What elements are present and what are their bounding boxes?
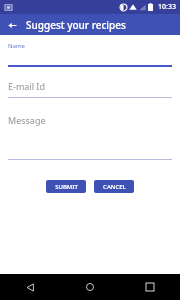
button[interactable]: CANCEL	[94, 180, 134, 193]
button[interactable]: Home	[60, 274, 120, 300]
staticText: E-mail Id	[8, 80, 45, 92]
button[interactable]: Message	[8, 114, 172, 160]
staticText: CANCEL	[103, 183, 126, 191]
staticText: 10:33	[158, 2, 176, 12]
button[interactable]: SUBMIT	[46, 180, 86, 193]
staticText: SUBMIT	[55, 183, 78, 191]
staticText: Message	[8, 114, 46, 126]
button[interactable]: E-mail Id	[8, 80, 172, 98]
button[interactable]: Back	[0, 274, 60, 300]
button[interactable]: Back	[4, 17, 20, 33]
button[interactable]: Name	[8, 42, 172, 67]
button[interactable]: Recent apps	[120, 274, 180, 300]
staticText: Suggest your recipes	[26, 18, 126, 32]
staticText: Name	[8, 42, 25, 50]
